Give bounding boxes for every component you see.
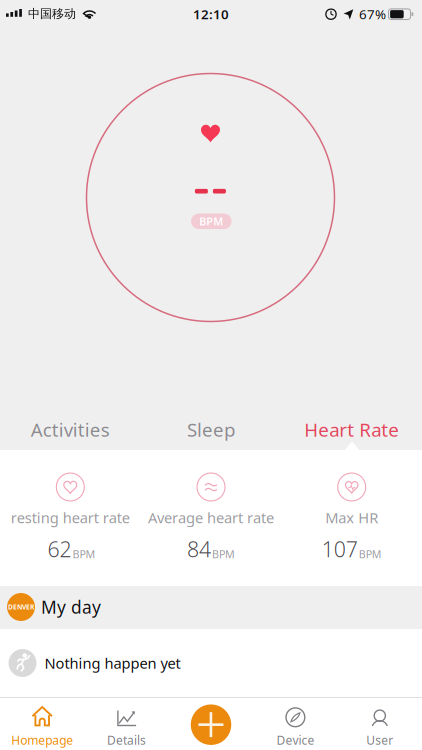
staticText: BPM: [212, 547, 235, 561]
staticText: BPM: [199, 214, 223, 228]
staticText: User: [366, 732, 393, 748]
button[interactable]: BPM: [191, 214, 232, 229]
staticText: BPM: [359, 547, 382, 561]
button[interactable]: Homepage: [0, 697, 84, 750]
staticText: 107: [322, 535, 358, 563]
staticText: Details: [107, 732, 146, 748]
button[interactable]: Activities: [0, 408, 140, 450]
staticText: 12:10: [193, 5, 229, 23]
staticText: BPM: [72, 547, 95, 561]
staticText: 84: [187, 535, 211, 563]
staticText: 67%: [359, 5, 386, 23]
staticText: resting heart rate: [11, 508, 130, 527]
button[interactable]: Nothing happen yet: [0, 638, 422, 688]
staticText: Max HR: [325, 508, 378, 527]
staticText: 中国移动: [28, 6, 76, 21]
button[interactable]: Device: [253, 697, 337, 750]
staticText: Homepage: [11, 732, 73, 748]
button[interactable]: Heart Rate: [282, 408, 422, 450]
staticText: My day: [41, 595, 101, 618]
button[interactable]: Details: [85, 697, 169, 750]
staticText: Nothing happen yet: [44, 653, 180, 673]
button[interactable]: Add: [191, 704, 231, 745]
button[interactable]: User: [338, 697, 422, 750]
staticText: Activities: [31, 417, 110, 442]
button[interactable]: DENVER: [0, 585, 422, 629]
staticText: 62: [47, 535, 71, 563]
staticText: Sleep: [187, 417, 235, 442]
staticText: Heart Rate: [304, 417, 399, 442]
staticText: DENVER: [8, 603, 34, 611]
staticText: Average heart rate: [148, 508, 274, 527]
staticText: Device: [276, 732, 314, 748]
button[interactable]: Sleep: [141, 408, 281, 450]
